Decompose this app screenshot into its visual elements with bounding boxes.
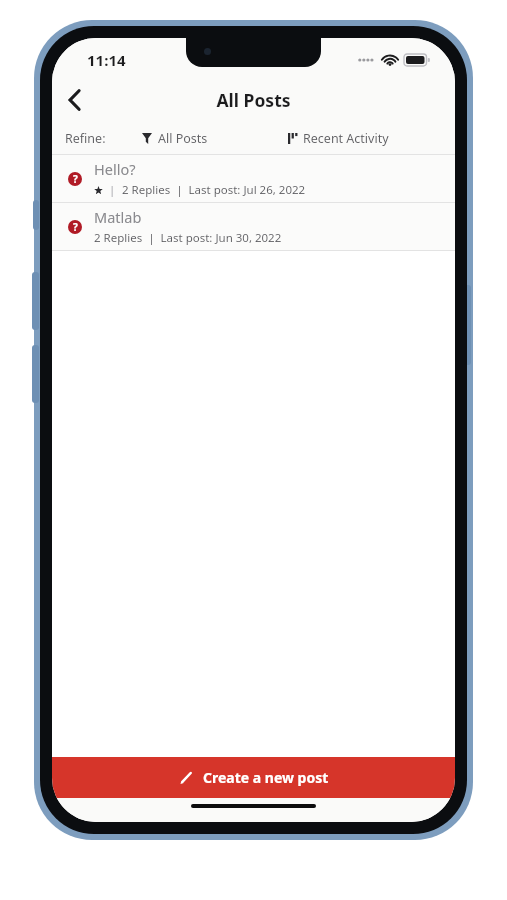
staticText: | [103,182,122,198]
staticText: 2 Replies | Last post: Jul 26, 2022 [122,182,306,198]
button[interactable]: Back [52,78,96,122]
button[interactable]: ? [52,155,455,202]
staticText: Create a new post [203,768,329,787]
staticText: ? [73,172,78,186]
button[interactable]: Recent Activity [286,126,391,151]
button[interactable]: All Posts [140,126,210,151]
button[interactable]: ? [52,203,455,250]
staticText: All Posts [216,88,291,112]
staticText: ? [73,220,78,234]
staticText: 2 Replies | Last post: Jun 30, 2022 [94,230,282,246]
staticText: Refine: [65,130,106,147]
staticText: Matlab [94,207,142,227]
staticText: 11:14 [87,50,126,70]
staticText: Recent Activity [303,130,389,147]
staticText: Hello? [94,159,136,179]
staticText: All Posts [158,130,208,147]
button[interactable]: Create a new post [52,757,455,798]
